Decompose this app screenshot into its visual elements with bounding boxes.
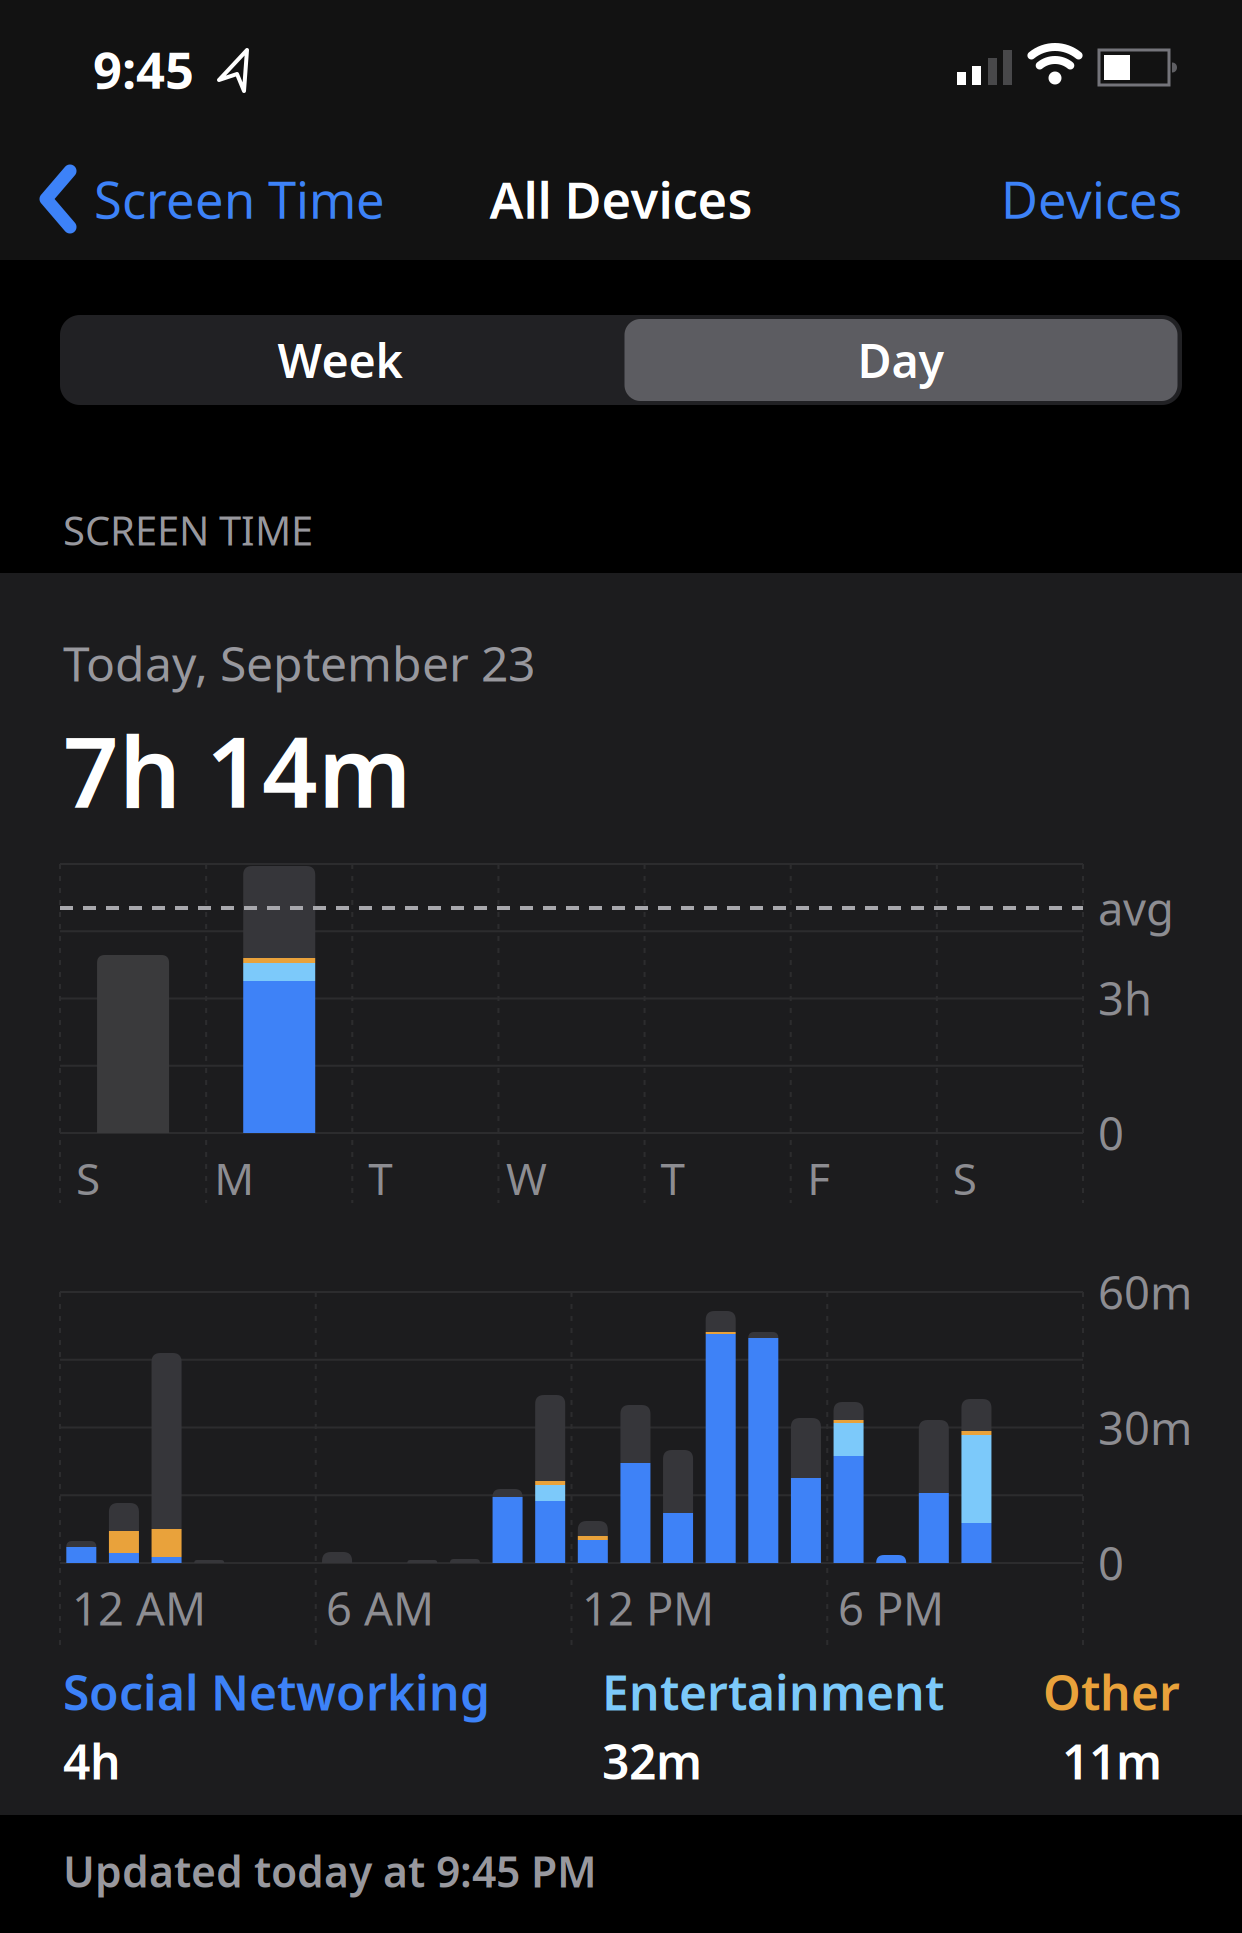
staticText: 6 AM xyxy=(326,1578,434,1638)
staticText: 32m xyxy=(602,1729,702,1793)
staticText: 9:45 xyxy=(93,35,194,103)
staticText: 60m xyxy=(1098,1262,1192,1322)
button[interactable]: Devices xyxy=(0,0,1242,1933)
staticText: S xyxy=(953,1149,977,1207)
staticText: F xyxy=(807,1149,830,1207)
staticText: 0 xyxy=(1098,1533,1124,1593)
staticText: Entertainment xyxy=(602,1660,944,1724)
staticText: All Devices xyxy=(489,165,752,233)
staticText: Devices xyxy=(1001,165,1182,233)
staticText: Social Networking xyxy=(63,1660,490,1724)
staticText: Updated today at 9:45 PM xyxy=(63,1843,597,1899)
staticText: Other xyxy=(1043,1660,1180,1724)
staticText: SCREEN TIME xyxy=(63,503,313,556)
staticText: 11m xyxy=(1062,1729,1162,1793)
staticText: M xyxy=(214,1149,254,1207)
staticText: 0 xyxy=(1098,1103,1124,1163)
staticText: 6 PM xyxy=(838,1578,944,1638)
staticText: Today, September 23 xyxy=(63,631,535,695)
staticText: S xyxy=(76,1149,100,1207)
staticText: 3h xyxy=(1098,968,1152,1028)
staticText: Screen Time xyxy=(94,165,385,233)
staticText: 30m xyxy=(1098,1397,1192,1458)
staticText: 7h 14m xyxy=(63,705,411,835)
staticText: W xyxy=(506,1149,547,1207)
staticText: T xyxy=(368,1149,392,1207)
staticText: Week xyxy=(277,329,402,391)
staticText: avg xyxy=(1098,878,1174,938)
staticText: 12 PM xyxy=(582,1578,714,1638)
staticText: T xyxy=(661,1149,685,1207)
staticText: 4h xyxy=(63,1729,121,1793)
button[interactable]: Screen Time xyxy=(0,0,1242,1933)
staticText: Day xyxy=(857,329,944,391)
button[interactable]: Week xyxy=(0,0,1242,1933)
button[interactable]: Day xyxy=(0,0,1242,1933)
staticText: 12 AM xyxy=(72,1578,206,1638)
